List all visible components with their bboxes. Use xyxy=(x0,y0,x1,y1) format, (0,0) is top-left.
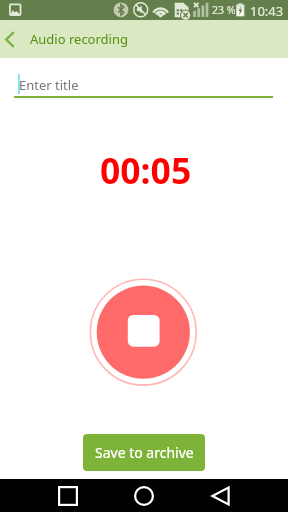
button[interactable]: Home xyxy=(124,479,164,512)
staticText: Audio recording xyxy=(30,30,128,48)
staticText: Enter title xyxy=(19,76,79,94)
button[interactable]: Save to archive xyxy=(83,434,205,471)
staticText: Save to archive xyxy=(95,443,194,462)
button[interactable]: Stop recording xyxy=(90,279,198,387)
button[interactable]: Back xyxy=(0,20,20,58)
button[interactable]: Recents xyxy=(48,479,88,512)
staticText: 23 % xyxy=(212,3,236,17)
staticText: 10:43 xyxy=(250,2,284,20)
button[interactable]: Back xyxy=(200,479,240,512)
staticText: 00:05 xyxy=(100,146,192,194)
